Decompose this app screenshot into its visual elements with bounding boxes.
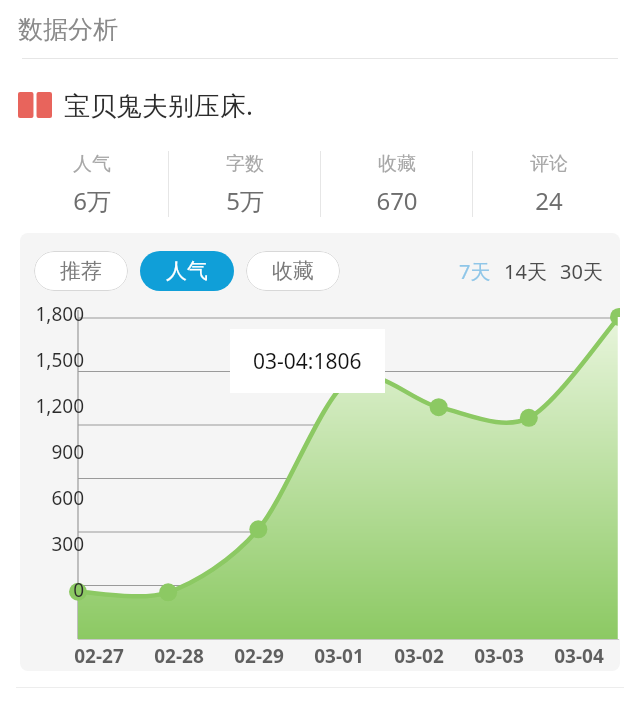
staticText: 03-04:1806 <box>253 347 362 376</box>
button[interactable]: 宝贝鬼夫别压床. <box>18 87 640 123</box>
staticText: 收藏 <box>272 258 314 284</box>
button[interactable]: 收藏 <box>246 251 340 291</box>
staticText: 02-28 <box>154 643 204 669</box>
staticText: 03-04 <box>554 643 604 669</box>
staticText: 6万 <box>73 184 111 217</box>
button[interactable]: 7天 <box>456 258 494 285</box>
staticText: 宝贝鬼夫别压床. <box>64 87 253 123</box>
staticText: 人气 <box>166 258 208 284</box>
button[interactable]: 推荐 <box>34 251 128 291</box>
staticText: 30天 <box>560 258 603 285</box>
staticText: 24 <box>535 184 563 217</box>
staticText: 评论 <box>530 152 568 176</box>
staticText: 1,800 <box>35 301 84 327</box>
staticText: 字数 <box>226 152 264 176</box>
staticText: 14天 <box>504 258 547 285</box>
staticText: 02-27 <box>74 643 124 669</box>
staticText: 600 <box>51 485 84 511</box>
button[interactable]: 30天 <box>557 258 606 285</box>
button[interactable]: 14天 <box>501 258 550 285</box>
button[interactable]: 收藏 <box>321 145 472 223</box>
staticText: 收藏 <box>378 152 416 176</box>
staticText: 0 <box>73 577 84 603</box>
staticText: 人气 <box>73 152 111 176</box>
staticText: 数据分析 <box>18 14 118 45</box>
staticText: 5万 <box>226 184 264 217</box>
staticText: 推荐 <box>60 258 102 284</box>
staticText: 900 <box>51 439 84 465</box>
button[interactable]: 人气 <box>140 251 234 291</box>
staticText: 03-02 <box>394 643 444 669</box>
button[interactable]: 人气 <box>16 145 168 223</box>
button[interactable]: 评论 <box>473 145 624 223</box>
button[interactable]: 字数 <box>169 145 320 223</box>
staticText: 7天 <box>459 258 491 285</box>
staticText: 300 <box>51 531 84 557</box>
staticText: 03-03 <box>474 643 524 669</box>
staticText: 670 <box>376 184 418 217</box>
staticText: 02-29 <box>234 643 284 669</box>
staticText: 1,200 <box>35 393 84 419</box>
staticText: 1,500 <box>35 347 84 373</box>
staticText: 03-01 <box>314 643 364 669</box>
